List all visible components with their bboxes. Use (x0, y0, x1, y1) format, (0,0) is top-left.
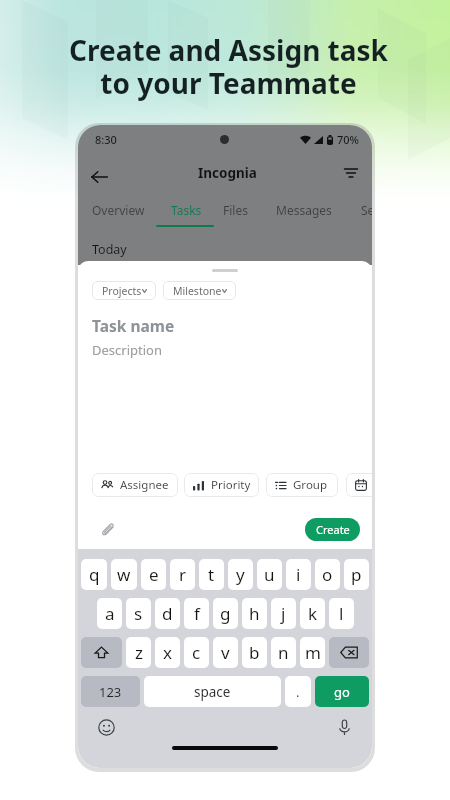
button[interactable]: b (242, 637, 267, 668)
button[interactable]: k (300, 598, 325, 629)
staticText: Create (316, 522, 350, 537)
button[interactable]: Assignee (92, 473, 178, 497)
staticText: . (296, 683, 300, 701)
button[interactable]: i (286, 559, 311, 590)
button[interactable]: Files (190, 195, 280, 229)
staticText: v (221, 641, 230, 664)
staticText: b (249, 641, 260, 664)
button[interactable]: Overview (78, 195, 163, 229)
button[interactable]: x (155, 637, 180, 668)
staticText: j (281, 602, 286, 625)
staticText: Task name (92, 315, 175, 336)
staticText: Description (92, 341, 162, 359)
staticText: go (334, 683, 350, 701)
button[interactable]: Shift (81, 637, 122, 668)
button[interactable]: h (242, 598, 267, 629)
staticText: Messages (276, 202, 332, 218)
staticText: space (194, 683, 231, 701)
staticText: Settings (361, 202, 372, 218)
staticText: Files (223, 202, 248, 218)
staticText: t (208, 563, 215, 586)
button[interactable]: Milestone (163, 281, 236, 300)
staticText: Projects (102, 284, 142, 298)
button[interactable]: Projects (92, 281, 156, 300)
staticText: w (117, 563, 131, 586)
staticText: f (194, 602, 200, 625)
staticText: z (135, 641, 143, 664)
button[interactable]: u (257, 559, 282, 590)
staticText: Group (293, 477, 328, 493)
staticText: p (351, 563, 362, 586)
button[interactable]: n (271, 637, 296, 668)
staticText: g (220, 602, 231, 625)
staticText: Tasks (171, 202, 202, 218)
staticText: l (339, 602, 344, 625)
staticText: Create and Assign task to your Teammate (69, 31, 388, 102)
staticText: a (105, 602, 115, 625)
button[interactable]: f (184, 598, 209, 629)
staticText: d (162, 602, 173, 625)
staticText: Incognia (198, 164, 257, 182)
staticText: n (278, 641, 289, 664)
button[interactable]: j (271, 598, 296, 629)
button[interactable]: m (300, 637, 325, 668)
button[interactable]: d (155, 598, 180, 629)
button[interactable]: q (81, 559, 107, 590)
button[interactable]: t (199, 559, 224, 590)
button[interactable]: s (126, 598, 151, 629)
button[interactable]: Priority (184, 473, 259, 497)
staticText: r (179, 563, 187, 586)
button[interactable]: Tasks (141, 195, 231, 229)
staticText: m (305, 641, 321, 664)
button[interactable]: v (213, 637, 238, 668)
button[interactable]: Attach file (97, 518, 119, 540)
staticText: c (192, 641, 201, 664)
staticText: i (296, 563, 301, 586)
staticText: s (134, 602, 143, 625)
button[interactable]: p (344, 559, 369, 590)
staticText: Priority (211, 477, 251, 493)
button[interactable]: . (285, 676, 311, 707)
button[interactable]: go (315, 676, 369, 707)
button[interactable]: a (97, 598, 122, 629)
button[interactable]: Due date (346, 473, 372, 497)
button[interactable]: r (170, 559, 195, 590)
staticText: Assignee (120, 477, 169, 493)
button[interactable]: Messages (259, 195, 349, 229)
staticText: y (236, 563, 245, 586)
staticText: 8:30 (95, 132, 117, 147)
staticText: q (89, 563, 100, 586)
button[interactable]: Create (305, 518, 360, 541)
button[interactable]: Filter (336, 158, 366, 188)
staticText: k (308, 602, 318, 625)
staticText: x (163, 641, 172, 664)
button[interactable]: y (228, 559, 253, 590)
staticText: Overview (92, 202, 145, 218)
button[interactable]: g (213, 598, 238, 629)
button[interactable]: Back (83, 161, 115, 193)
staticText: h (249, 602, 260, 625)
button[interactable]: l (329, 598, 354, 629)
staticText: 70% (337, 132, 359, 147)
button[interactable]: Voice input (333, 716, 355, 738)
staticText: Today (92, 241, 127, 258)
button[interactable]: o (315, 559, 340, 590)
button[interactable]: c (184, 637, 209, 668)
button[interactable]: Emoji (95, 716, 117, 738)
button[interactable]: Settings (339, 195, 372, 229)
staticText: o (322, 563, 333, 586)
button[interactable]: 123 (81, 676, 140, 707)
staticText: u (264, 563, 275, 586)
button[interactable]: e (141, 559, 166, 590)
staticText: 123 (99, 683, 122, 701)
staticText: Milestone (173, 284, 222, 298)
button[interactable]: space (144, 676, 281, 707)
staticText: e (149, 563, 159, 586)
button[interactable]: z (126, 637, 151, 668)
button[interactable]: w (111, 559, 137, 590)
button[interactable]: Group (266, 473, 338, 497)
button[interactable]: Backspace (329, 637, 369, 668)
